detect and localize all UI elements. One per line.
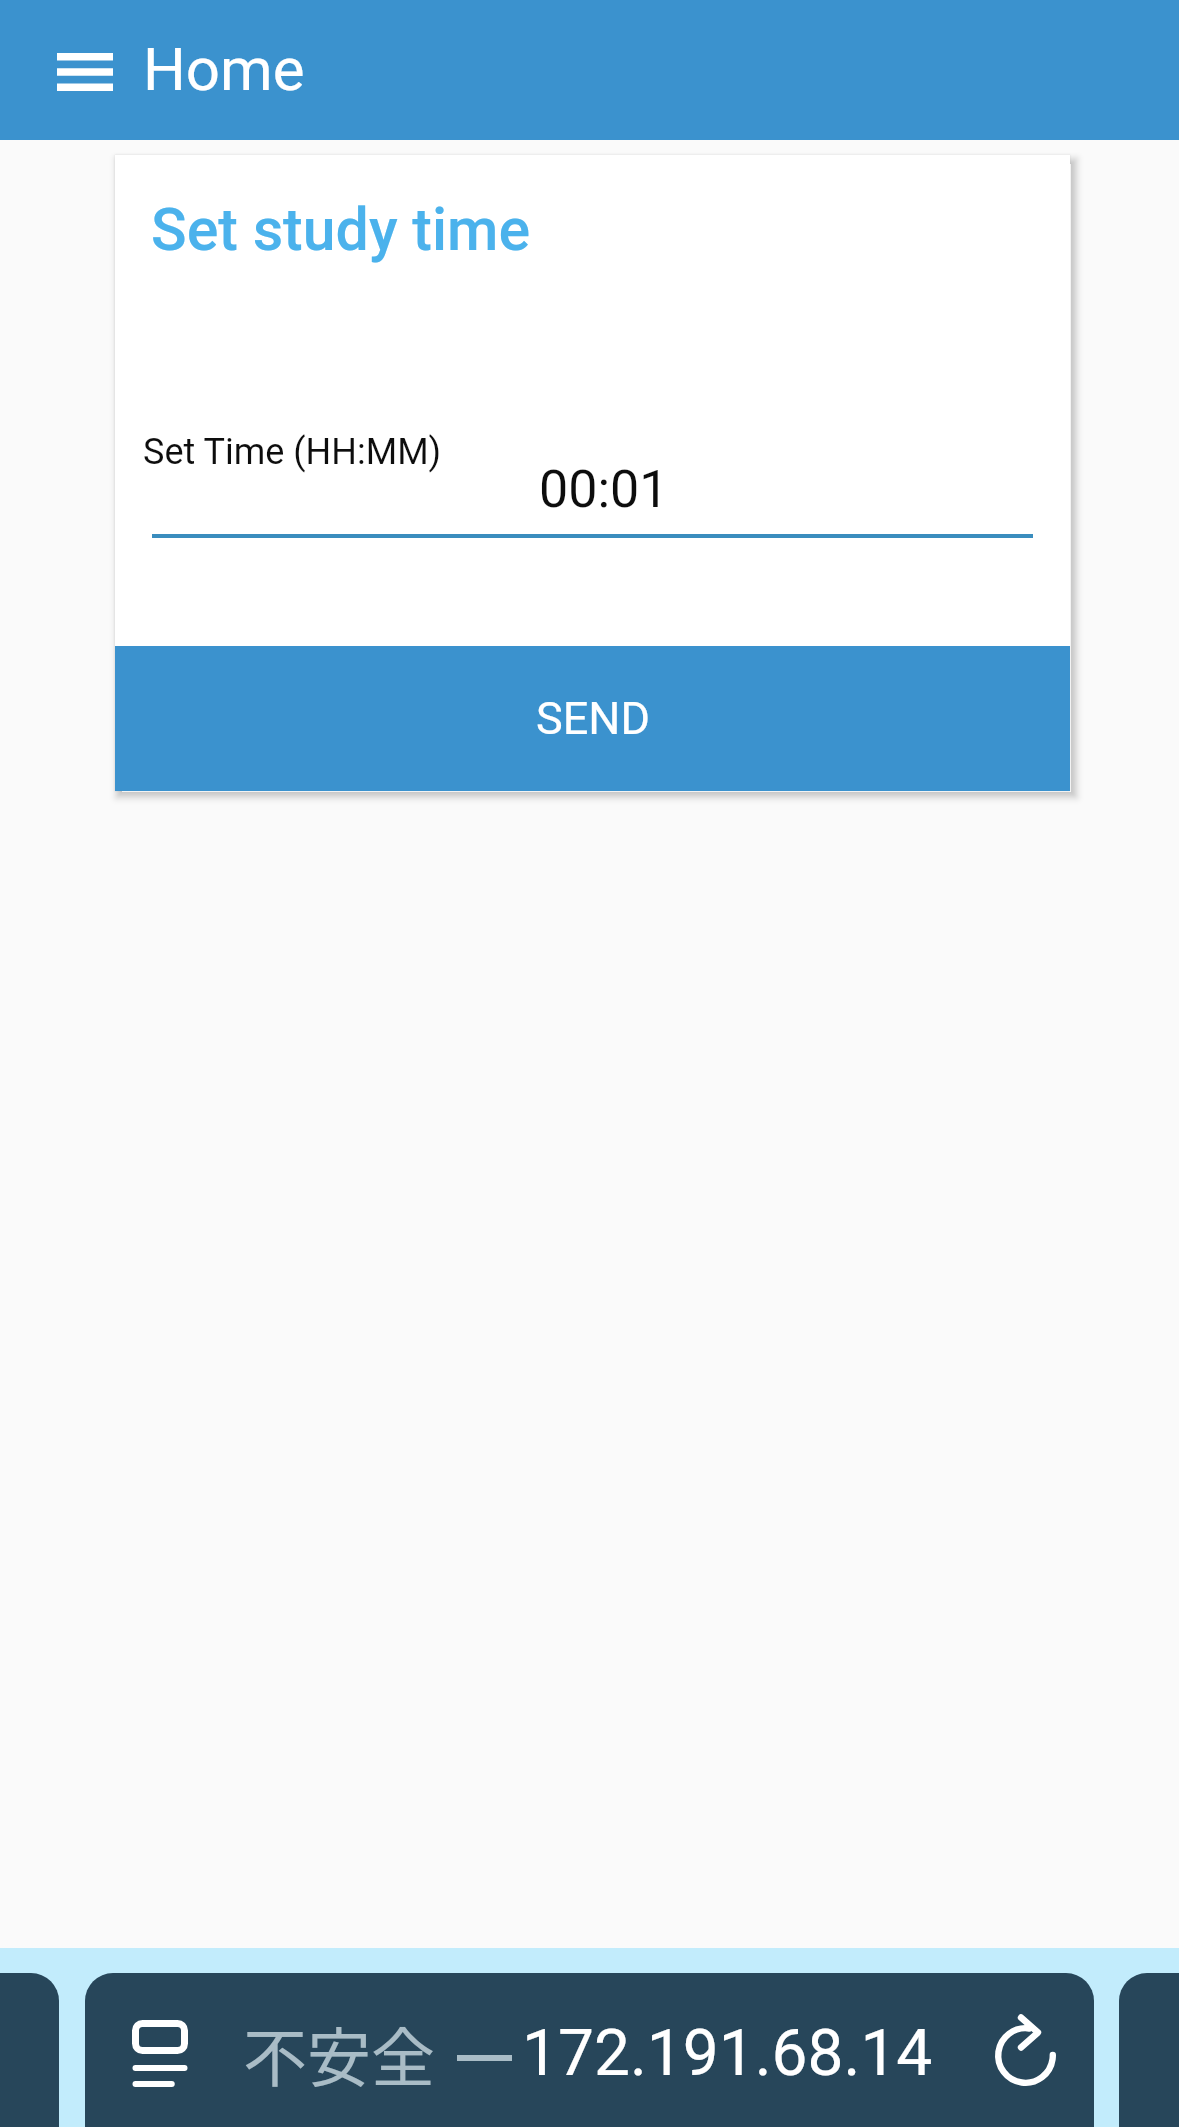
button[interactable]: Previous tab [0,1973,59,2127]
staticText: Set study time [151,195,531,264]
button[interactable]: Open navigation menu [26,28,144,116]
button[interactable]: SEND [115,646,1070,791]
button[interactable]: Reading mode [85,1973,1094,2127]
button[interactable]: Reading mode [111,1999,209,2109]
staticText: 172.191.68.14 [522,2016,933,2091]
staticText: 00:01 [539,459,669,520]
staticText: 不安全 [243,2007,435,2100]
button[interactable]: Next tab [1119,1973,1179,2127]
button[interactable]: Reload page [970,2000,1082,2100]
staticText: SEND [536,692,650,745]
staticText: Home [143,34,305,104]
staticText: Set Time (HH:MM) [143,431,442,473]
button[interactable]: Set Time (HH:MM) [143,415,1042,543]
